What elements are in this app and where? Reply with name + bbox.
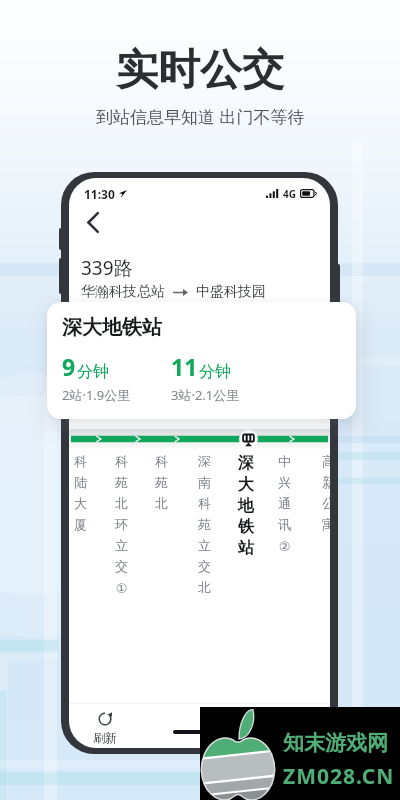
button[interactable]: 科陆大厦 [73,453,88,633]
button[interactable]: 返回 [74,209,112,236]
button[interactable]: 深大地铁站 [237,453,255,633]
staticText: 实时公交 [116,44,284,97]
staticText: 分钟 [77,362,109,382]
staticText: ZM028.CN [283,762,395,791]
button[interactable]: 科苑北 [154,453,169,633]
staticText: 339路 [81,255,133,281]
staticText: 深大地铁站 [237,453,255,557]
button[interactable]: 刷新 [87,712,123,745]
staticText: 深大地铁站 [62,315,162,340]
button[interactable]: 中兴通讯② [277,453,292,633]
staticText: 2站·1.9公里 [62,386,131,404]
staticText: 刷新 [93,730,117,745]
staticText: 中盛科技园 [196,283,266,301]
staticText: 到站信息早知道 出门不等待 [96,105,305,128]
staticText: 深南科苑立交北 [197,453,212,596]
staticText: 11 [171,351,198,382]
staticText: 9 [62,351,76,382]
other: 站牌 [239,430,258,449]
staticText: 11:30 [84,186,115,202]
button[interactable]: 科苑北环立交① [114,453,129,633]
staticText: 高新公寓 [321,453,330,533]
staticText: 科陆大厦 [73,453,88,533]
staticText: 华瀚科技总站 [81,283,165,301]
staticText: 科苑北 [154,453,169,512]
button[interactable]: 高新公寓 [321,453,330,633]
staticText: 中兴通讯② [277,453,292,554]
staticText: 3站·2.1公里 [171,386,240,404]
staticText: 分钟 [199,362,231,382]
button[interactable]: 深大地铁站 [47,302,356,419]
button[interactable]: 深南科苑立交北 [197,453,212,633]
staticText: 科苑北环立交① [114,453,129,596]
staticText: 知末游戏网 [283,730,388,756]
staticText: 4G [283,187,296,201]
